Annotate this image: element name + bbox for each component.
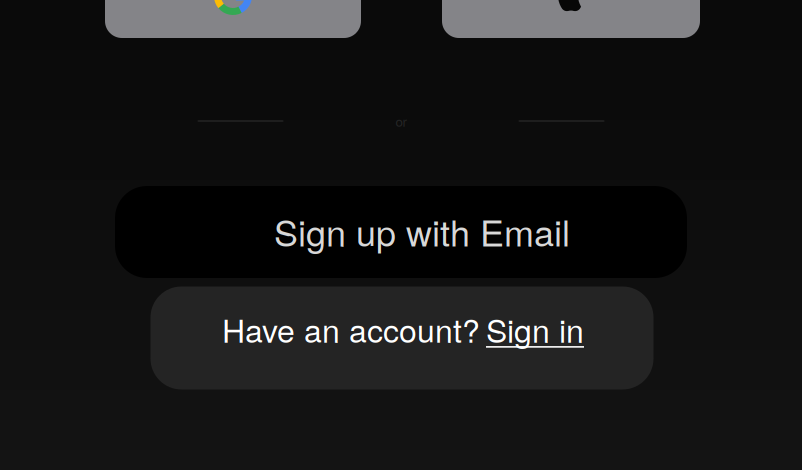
button[interactable]: Continue with Apple <box>442 0 700 38</box>
button[interactable]: Have an account? <box>150 286 653 389</box>
staticText: Have an account? <box>222 306 480 352</box>
staticText: Sign up with Email <box>274 205 570 257</box>
staticText: Sign in <box>486 306 584 352</box>
button[interactable]: Sign up with Email <box>115 186 687 278</box>
button[interactable]: Continue with Google <box>105 0 361 38</box>
staticText: or <box>395 111 406 131</box>
